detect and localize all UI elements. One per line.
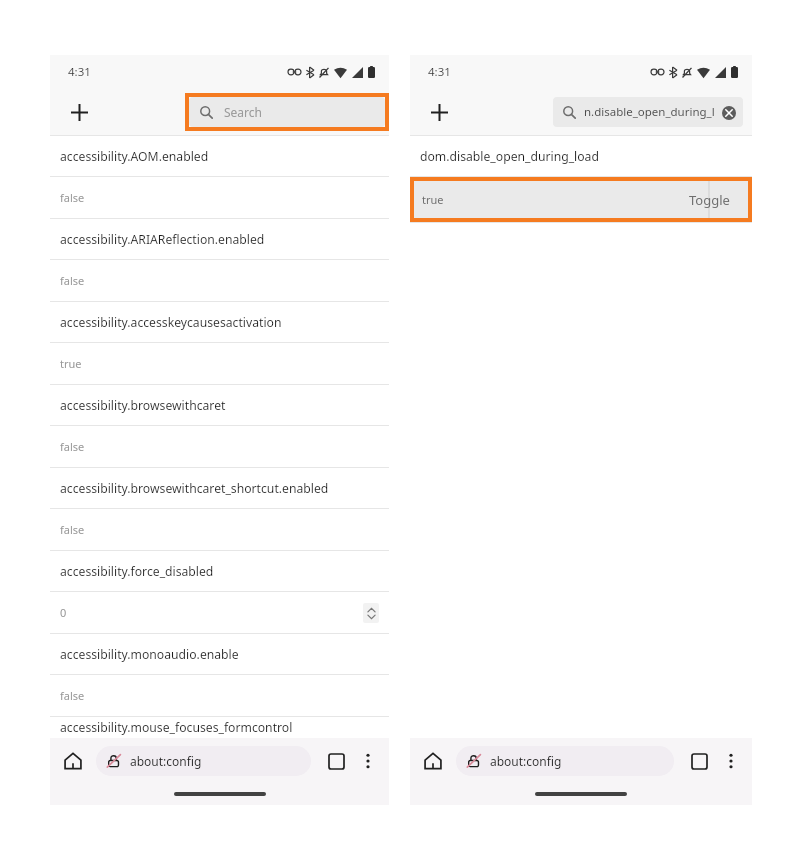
button[interactable]: accessibility.ARIAReflection.enabled (50, 219, 389, 259)
button[interactable]: true (414, 181, 748, 218)
button[interactable]: Tabs: 1 (684, 746, 714, 776)
staticText: dom.disable_open_during_load (420, 148, 599, 165)
staticText: n.disable_open_during_load (584, 104, 716, 120)
staticText: 4:31 (428, 64, 451, 80)
button[interactable]: false (50, 177, 389, 218)
button[interactable]: accessibility.monoaudio.enable (50, 634, 389, 674)
button[interactable]: false (50, 426, 389, 467)
button[interactable]: accessibility.mouse_focuses_formcontrol (50, 717, 389, 738)
button[interactable]: New (418, 91, 460, 133)
button[interactable]: Toggle (671, 181, 748, 218)
staticText: accessibility.force_disabled (60, 563, 214, 580)
staticText: false (60, 190, 85, 205)
button[interactable]: accessibility.browsewithcaret_shortcut.e… (50, 468, 389, 508)
button[interactable]: dom.disable_open_during_load (410, 136, 752, 176)
button[interactable]: false (50, 675, 389, 716)
staticText: accessibility.browsewithcaret_shortcut.e… (60, 480, 329, 497)
staticText: accessibility.ARIAReflection.enabled (60, 231, 265, 248)
staticText: about:config (130, 753, 202, 769)
staticText: false (60, 522, 85, 537)
button[interactable]: n.disable_open_during_load (553, 97, 743, 127)
staticText: about:config (490, 753, 562, 769)
staticText: false (60, 439, 85, 454)
button[interactable]: Home (56, 744, 90, 778)
button[interactable]: accessibility.force_disabled (50, 551, 389, 591)
button[interactable]: accessibility.accesskeycausesactivation (50, 302, 389, 342)
staticText: true (60, 356, 82, 371)
staticText: accessibility.accesskeycausesactivation (60, 314, 282, 331)
button[interactable]: Change value (363, 603, 379, 623)
button[interactable]: Tabs: 1 (321, 746, 351, 776)
staticText: accessibility.browsewithcaret (60, 397, 226, 414)
staticText: Search (224, 104, 262, 120)
button[interactable]: accessibility.browsewithcaret (50, 385, 389, 425)
staticText: false (60, 688, 85, 703)
staticText: true (422, 192, 444, 207)
button[interactable]: false (50, 260, 389, 301)
staticText: accessibility.monoaudio.enable (60, 646, 239, 663)
button[interactable]: Search (189, 97, 385, 127)
button[interactable]: 0 (50, 592, 389, 633)
staticText: accessibility.AOM.enabled (60, 148, 209, 165)
button[interactable]: More options (716, 746, 746, 776)
staticText: 0 (60, 605, 67, 620)
staticText: Toggle (689, 191, 730, 209)
button[interactable]: Home (416, 744, 450, 778)
button[interactable]: accessibility.AOM.enabled (50, 136, 389, 176)
button[interactable]: about:config (96, 746, 311, 776)
staticText: false (60, 273, 85, 288)
button[interactable]: true (50, 343, 389, 384)
staticText: 4:31 (68, 64, 91, 80)
button[interactable]: false (50, 509, 389, 550)
button[interactable]: Clear search (721, 105, 736, 120)
button[interactable]: about:config (456, 746, 674, 776)
button[interactable]: More options (353, 746, 383, 776)
staticText: accessibility.mouse_focuses_formcontrol (60, 719, 293, 736)
button[interactable]: New (58, 91, 100, 133)
